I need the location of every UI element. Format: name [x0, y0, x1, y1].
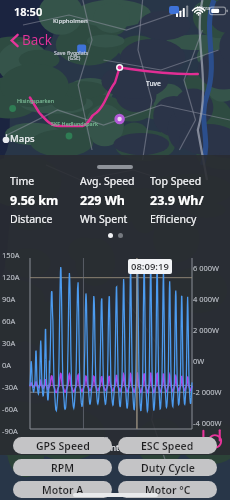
- staticText: (GSE): [68, 55, 81, 62]
- staticText: Kärra: [197, 5, 211, 12]
- staticText: Efficiency: [150, 212, 197, 226]
- staticText: 0A: [2, 360, 12, 369]
- staticText: 4 000W: [193, 294, 220, 303]
- staticText: GPS Speed: [36, 439, 90, 453]
- staticText: ESC Speed: [141, 439, 194, 453]
- button[interactable]: Time: [10, 174, 80, 226]
- staticText: Motor A: [42, 483, 84, 497]
- button[interactable]: Top Speed: [150, 174, 220, 226]
- staticText: Hisingsparken: [17, 97, 55, 104]
- button[interactable]: RPM: [13, 459, 112, 476]
- staticText: Distance: [10, 212, 53, 226]
- staticText: 08:08:27: [127, 434, 157, 444]
- button[interactable]: Motor A: [13, 481, 112, 498]
- staticText: Total Current In: [67, 442, 130, 454]
- staticText: 150A: [2, 250, 20, 259]
- staticText: Back: [22, 31, 53, 49]
- staticText: -30A: [2, 382, 18, 391]
- staticText: Avg. Speed: [80, 174, 135, 188]
- staticText: 60A: [2, 316, 16, 325]
- button[interactable]: Avg. Speed: [80, 174, 150, 226]
- staticText: 6 000W: [193, 263, 220, 272]
- button[interactable]: Back: [6, 28, 57, 52]
- staticText: 30A: [2, 338, 16, 347]
- staticText: 229 Wh: [80, 192, 125, 209]
- button[interactable]: Motor °C: [118, 481, 217, 498]
- button[interactable]: Duty Cycle: [118, 459, 217, 476]
- staticText: 23.9 Wh/km: [150, 192, 220, 209]
- staticText: -4 000W: [193, 418, 222, 427]
- staticText: 0W: [193, 356, 205, 365]
- button[interactable]: ESC Speed: [118, 437, 217, 454]
- staticText: SKF Hedlundspark: [51, 120, 98, 127]
- staticText: Top Speed: [150, 174, 202, 188]
- staticText: 08:09:19: [131, 260, 169, 273]
- button[interactable]: GPS Speed: [13, 437, 112, 454]
- staticText: 90A: [2, 294, 16, 303]
- other: App logo: [201, 429, 225, 451]
- staticText: Duty Cycle: [141, 461, 195, 475]
- staticText: -60A: [2, 404, 18, 413]
- staticText: Tuve: [146, 79, 161, 88]
- staticText: 08:13:32: [175, 434, 205, 444]
- staticText: 08:03:22: [79, 434, 109, 444]
- staticText: Wh Spent: [80, 212, 128, 226]
- staticText: 120A: [2, 272, 20, 281]
- staticText: Kippholmen: [53, 17, 88, 25]
- staticText: RPM: [51, 461, 74, 475]
- staticText: -90A: [2, 426, 18, 435]
- staticText: 18:50: [14, 4, 43, 19]
- staticText: Motor °C: [145, 483, 191, 497]
- staticText: Maps: [10, 132, 35, 145]
- staticText: -2 000W: [193, 387, 222, 396]
- staticText: 07:58:18: [31, 434, 61, 444]
- staticText: Save flygplats: [54, 49, 89, 56]
- staticText: Power: [145, 442, 171, 454]
- staticText: 2 000W: [193, 325, 220, 334]
- staticText: 9.56 km: [10, 192, 59, 209]
- staticText: Time: [10, 174, 35, 188]
